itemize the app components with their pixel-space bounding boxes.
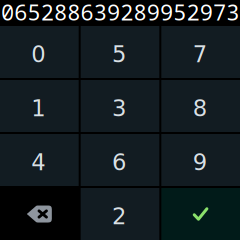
button[interactable]: 9 [161, 134, 240, 186]
staticText: 4 [31, 149, 45, 176]
staticText: 5 [112, 41, 126, 68]
staticText: 7 [193, 41, 207, 68]
staticText: 6 [112, 149, 126, 176]
button[interactable]: 0 [0, 26, 79, 78]
button[interactable]: 6 [81, 134, 159, 186]
button[interactable]: 1 [0, 80, 79, 132]
button[interactable]: 7 [161, 26, 240, 78]
staticText: 9 [193, 149, 207, 176]
button[interactable]: Delete [0, 188, 79, 240]
button[interactable]: 8 [161, 80, 240, 132]
staticText: 065288639289952973 [1, 0, 239, 27]
button[interactable]: 5 [81, 26, 159, 78]
button[interactable]: Confirm [161, 188, 240, 240]
staticText: 0 [31, 41, 45, 68]
staticText: 2 [112, 203, 126, 230]
button[interactable]: 4 [0, 134, 79, 186]
button[interactable]: 3 [81, 80, 159, 132]
staticText: 1 [31, 95, 45, 122]
staticText: 3 [112, 95, 126, 122]
staticText: 8 [193, 95, 207, 122]
button[interactable]: 2 [81, 188, 159, 240]
